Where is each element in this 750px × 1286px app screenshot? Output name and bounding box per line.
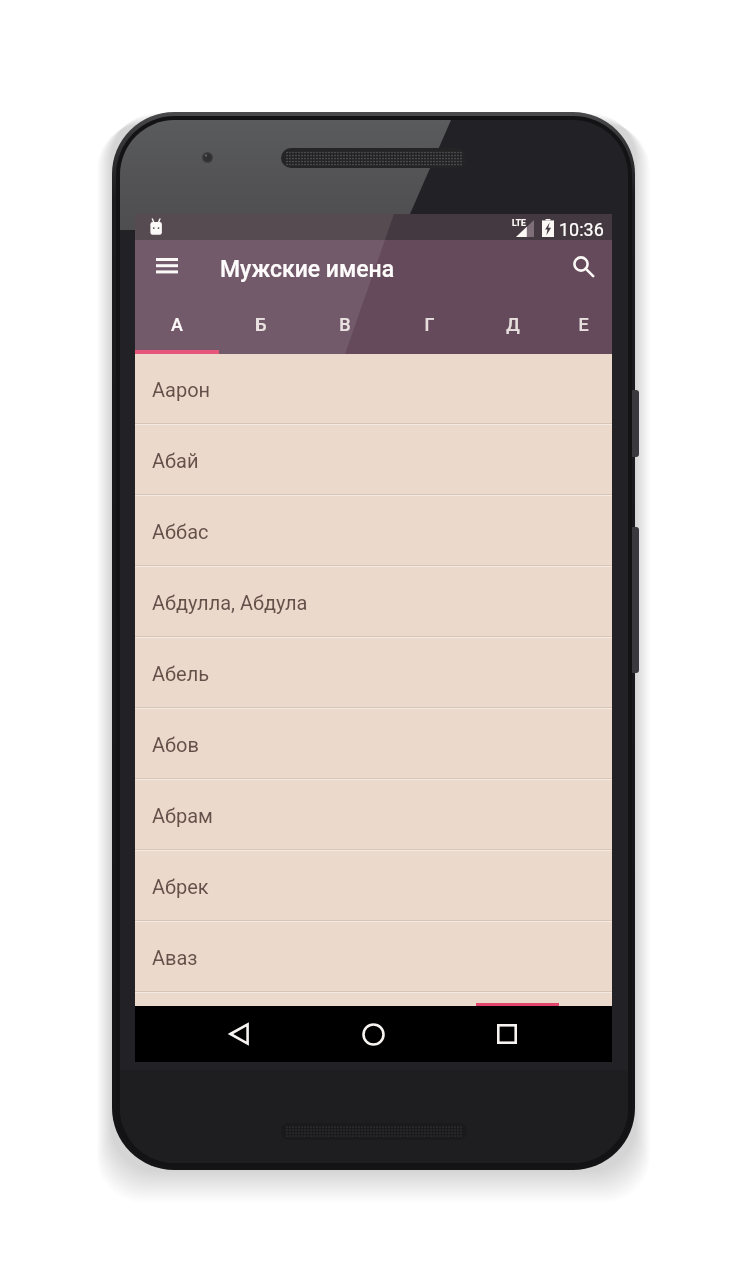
- staticText: LTE: [512, 218, 526, 228]
- button[interactable]: Аббас: [135, 496, 612, 567]
- staticText: Аббас: [152, 520, 209, 543]
- button[interactable]: Абрам: [135, 780, 612, 851]
- staticText: Абов: [152, 733, 199, 756]
- staticText: Абрам: [152, 804, 213, 827]
- staticText: Абель: [152, 662, 210, 685]
- button[interactable]: Абрек: [135, 851, 612, 922]
- button[interactable]: Е: [555, 298, 612, 350]
- staticText: Аваз: [152, 946, 198, 969]
- staticText: Д: [506, 314, 520, 335]
- button[interactable]: В: [303, 298, 387, 350]
- button[interactable]: Абов: [135, 709, 612, 780]
- staticText: Е: [578, 314, 589, 335]
- button[interactable]: Recents: [467, 1006, 547, 1062]
- button[interactable]: Б: [219, 298, 303, 350]
- staticText: Мужские имена: [220, 256, 395, 283]
- button[interactable]: [135, 964, 612, 1006]
- button[interactable]: Home: [333, 1006, 413, 1062]
- button[interactable]: Menu: [146, 240, 190, 298]
- staticText: Г: [424, 314, 435, 335]
- button[interactable]: А: [135, 298, 219, 350]
- staticText: Абрек: [152, 875, 209, 898]
- button[interactable]: Абель: [135, 638, 612, 709]
- staticText: Б: [255, 314, 267, 335]
- button[interactable]: Аарон: [135, 354, 612, 425]
- staticText: Абдулла, Абдула: [152, 591, 308, 614]
- button[interactable]: Г: [387, 298, 471, 350]
- staticText: В: [339, 314, 351, 335]
- button[interactable]: Back: [199, 1006, 279, 1062]
- button[interactable]: Д: [471, 298, 555, 350]
- staticText: А: [171, 314, 183, 335]
- button[interactable]: Абдулла, Абдула: [135, 567, 612, 638]
- button[interactable]: Search: [557, 240, 609, 298]
- staticText: Аарон: [152, 378, 211, 401]
- button[interactable]: Аваз: [135, 922, 612, 993]
- staticText: 10:36: [559, 219, 604, 240]
- staticText: Абай: [152, 449, 199, 472]
- button[interactable]: Абай: [135, 425, 612, 496]
